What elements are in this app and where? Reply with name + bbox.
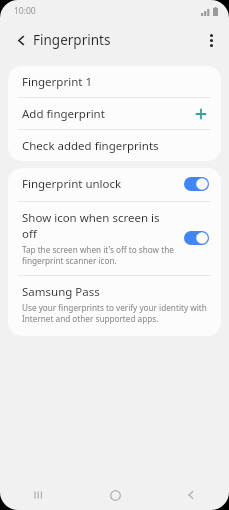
staticText: Fingerprint 1 xyxy=(22,74,92,90)
staticText: Use your fingerprints to verify your ide… xyxy=(22,302,207,324)
button[interactable]: Samsung Pass xyxy=(8,276,221,336)
staticText: Show icon when screen is off xyxy=(22,210,176,242)
staticText: Tap the screen when it's off to show the… xyxy=(22,244,174,266)
staticText: Add fingerprint xyxy=(22,106,105,122)
staticText: 10:00 xyxy=(14,5,36,17)
button[interactable]: Home xyxy=(77,480,153,510)
button[interactable]: Fingerprint unlock xyxy=(8,168,221,201)
button[interactable]: Toggle on xyxy=(184,231,209,245)
button[interactable]: Toggle on xyxy=(184,177,209,191)
button[interactable]: Fingerprint 1 xyxy=(8,66,221,97)
button[interactable]: Back xyxy=(8,27,34,53)
button[interactable]: Recent apps xyxy=(0,480,77,510)
button[interactable]: Show icon when screen is off xyxy=(8,202,221,275)
staticText: Check added fingerprints xyxy=(22,138,159,154)
button[interactable]: More options xyxy=(198,27,224,53)
button[interactable]: Add fingerprint xyxy=(8,98,221,129)
button[interactable]: Back xyxy=(153,480,229,510)
staticText: Samsung Pass xyxy=(22,284,100,300)
button[interactable]: Check added fingerprints xyxy=(8,130,221,161)
staticText: Fingerprints xyxy=(33,31,111,49)
staticText: Fingerprint unlock xyxy=(22,176,122,192)
